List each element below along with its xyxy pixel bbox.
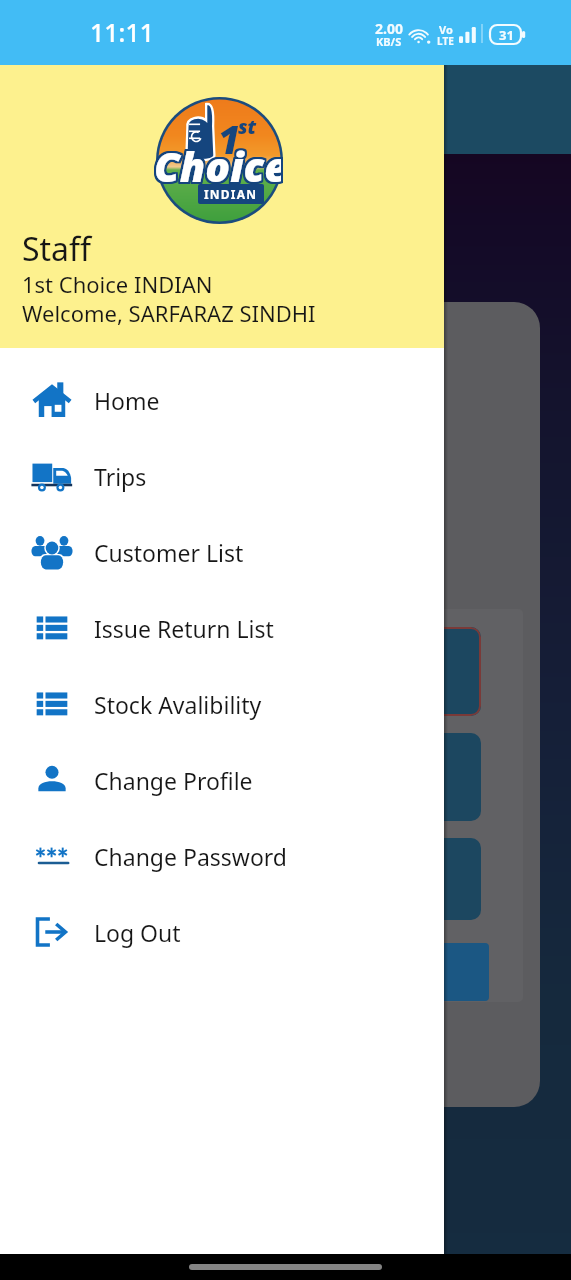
staticText: 2.00 xyxy=(375,19,403,38)
staticText: 1st Choice INDIAN xyxy=(22,269,213,299)
staticText: Log Out xyxy=(94,917,181,948)
button[interactable]: Trips xyxy=(0,438,444,514)
staticText: Choice xyxy=(156,136,283,192)
staticText: Staff xyxy=(22,227,92,271)
staticText: Choice xyxy=(152,137,279,193)
staticText: Choice xyxy=(152,138,279,194)
button[interactable]: Home xyxy=(0,362,444,438)
staticText: Stock Avalibility xyxy=(94,689,262,720)
staticText: Choice xyxy=(153,138,280,194)
staticText: Choice xyxy=(155,136,282,192)
staticText: 11:11 xyxy=(90,15,155,49)
button[interactable]: Log Out xyxy=(0,894,444,970)
staticText: LTE xyxy=(437,34,454,48)
staticText: 1 xyxy=(218,113,241,165)
button[interactable]: Change Password xyxy=(0,818,444,894)
staticText: Home xyxy=(94,385,160,416)
staticText: Choice xyxy=(154,139,281,195)
staticText: Choice xyxy=(152,139,279,195)
staticText: Choice xyxy=(154,138,281,194)
staticText: Choice xyxy=(153,139,280,195)
staticText: Choice xyxy=(156,140,283,196)
staticText: Change Profile xyxy=(94,765,253,796)
staticText: Choice xyxy=(155,137,282,193)
staticText: Choice xyxy=(155,139,282,195)
staticText: Choice xyxy=(156,137,283,193)
staticText: Choice xyxy=(156,138,283,194)
staticText: INDIAN xyxy=(204,186,258,202)
button[interactable]: Close navigation drawer xyxy=(0,0,571,1280)
staticText: Choice xyxy=(153,136,280,192)
button[interactable]: Change Profile xyxy=(0,742,444,818)
staticText: Choice xyxy=(155,138,282,194)
button[interactable]: Issue Return List xyxy=(0,590,444,666)
button[interactable]: 1 xyxy=(0,65,444,348)
staticText: Choice xyxy=(152,140,279,196)
staticText: Choice xyxy=(153,137,280,193)
staticText: Choice xyxy=(155,140,282,196)
button[interactable]: Customer List xyxy=(0,514,444,590)
staticText: Choice xyxy=(154,140,281,196)
staticText: Vo xyxy=(439,22,453,37)
staticText: KB/S xyxy=(376,34,402,49)
staticText: Issue Return List xyxy=(94,613,274,644)
staticText: Choice xyxy=(154,137,281,193)
staticText: Welcome, SARFARAZ SINDHI xyxy=(22,298,316,328)
staticText: Change Password xyxy=(94,841,287,872)
staticText: 31 xyxy=(499,26,514,44)
staticText: Customer List xyxy=(94,537,244,568)
staticText: st xyxy=(238,114,257,140)
staticText: Choice xyxy=(154,136,281,192)
staticText: Choice xyxy=(156,139,283,195)
staticText: Choice xyxy=(152,136,279,192)
staticText: Choice xyxy=(153,140,280,196)
staticText: Trips xyxy=(94,461,147,492)
button[interactable]: Stock Avalibility xyxy=(0,666,444,742)
